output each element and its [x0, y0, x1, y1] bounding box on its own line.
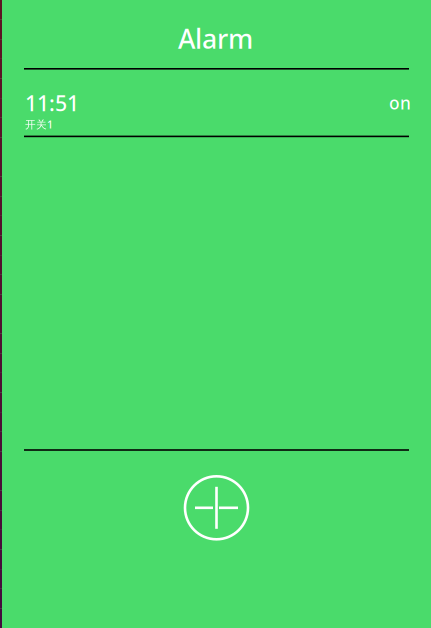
button[interactable]: 11:51 [0, 70, 431, 136]
button[interactable]: Add alarm [0, 451, 431, 565]
staticText: 11:51 [25, 89, 79, 117]
staticText: on [389, 91, 411, 114]
staticText: Alarm [178, 21, 253, 56]
staticText: 开关1 [25, 117, 53, 131]
